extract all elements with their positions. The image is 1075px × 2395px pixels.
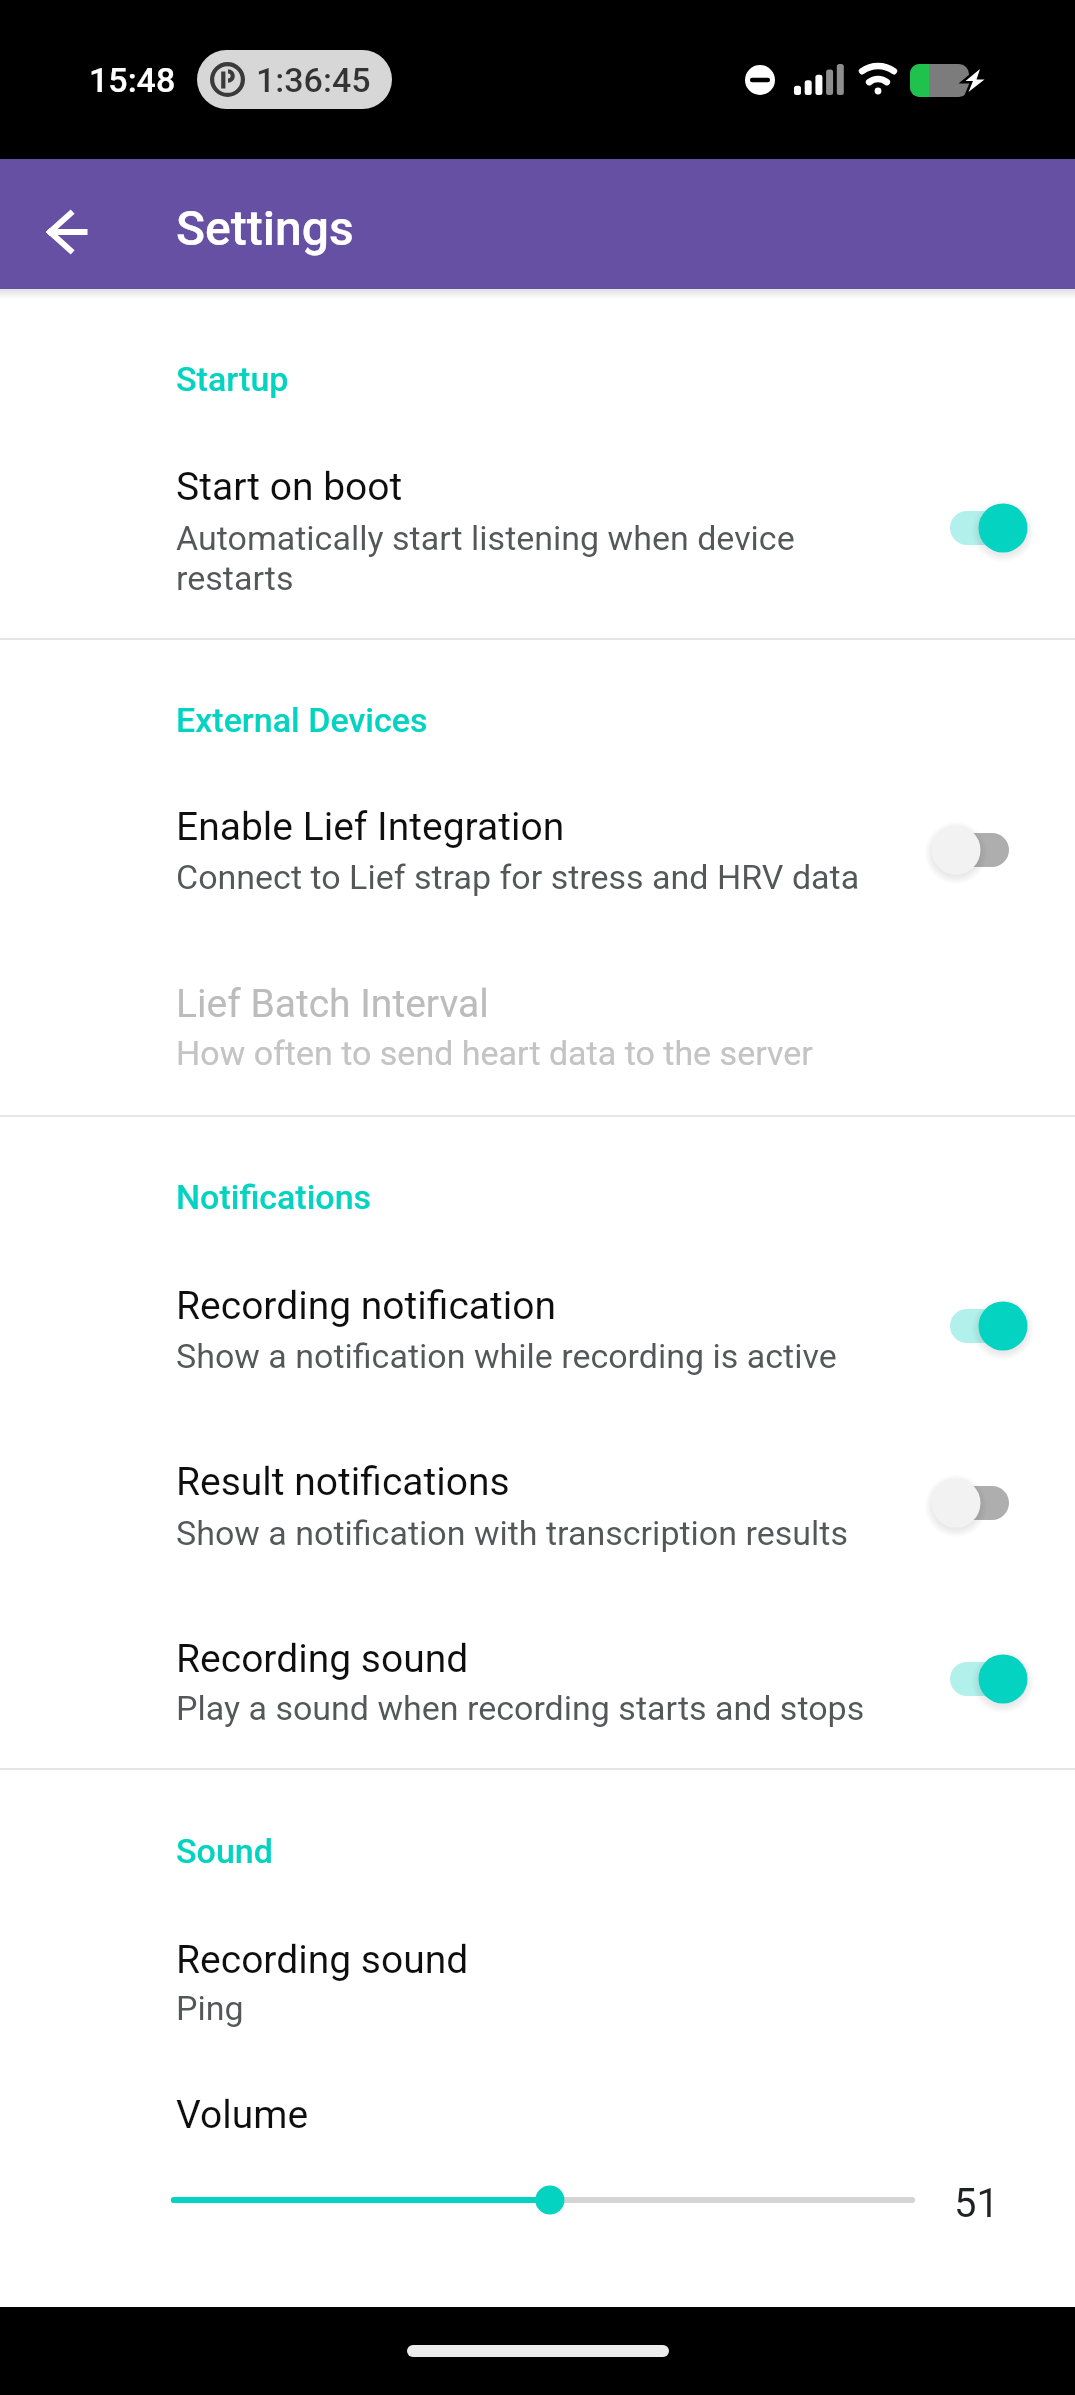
staticText: External Devices: [176, 700, 428, 740]
button[interactable]: Recording notification: [0, 1259, 1075, 1399]
button[interactable]: Switch on: [900, 1281, 1060, 1371]
button[interactable]: Recording sound: [0, 1612, 1075, 1752]
button[interactable]: Switch off: [900, 805, 1060, 895]
staticText: 1:36:45: [256, 60, 371, 100]
button[interactable]: Volume slider: [150, 2166, 940, 2234]
staticText: Automatically start listening when devic…: [176, 518, 795, 599]
button[interactable]: Result notifications: [0, 1435, 1075, 1575]
staticText: Enable Lief Integration: [176, 804, 565, 850]
staticText: Result notifications: [176, 1459, 510, 1505]
button[interactable]: Home: [407, 2345, 669, 2357]
button[interactable]: Recording sound: [0, 1913, 1075, 2053]
staticText: Show a notification with transcription r…: [176, 1513, 848, 1553]
staticText: Ping: [176, 1988, 244, 2028]
staticText: Volume: [176, 2092, 309, 2138]
button[interactable]: Switch on: [900, 483, 1060, 573]
button[interactable]: Volume: [0, 2068, 1075, 2258]
staticText: How often to send heart data to the serv…: [176, 1033, 813, 1073]
button[interactable]: Lief Batch Interval: [0, 957, 1075, 1097]
staticText: Sound: [176, 1831, 273, 1871]
staticText: Play a sound when recording starts and s…: [176, 1688, 865, 1728]
staticText: Settings: [176, 200, 354, 256]
staticText: Recording sound: [176, 1937, 469, 1983]
staticText: Lief Batch Interval: [176, 981, 489, 1027]
staticText: 51: [954, 2180, 999, 2227]
button[interactable]: Switch off: [900, 1458, 1060, 1548]
staticText: Recording sound: [176, 1636, 469, 1682]
button[interactable]: Switch on: [900, 1634, 1060, 1724]
staticText: Show a notification while recording is a…: [176, 1336, 837, 1376]
button[interactable]: Recording timer: [197, 50, 392, 109]
button[interactable]: Back: [20, 184, 108, 272]
staticText: Notifications: [176, 1177, 372, 1217]
staticText: Start on boot: [176, 464, 403, 510]
staticText: Startup: [176, 359, 289, 399]
staticText: Connect to Lief strap for stress and HRV…: [176, 857, 860, 897]
staticText: Recording notification: [176, 1283, 557, 1329]
button[interactable]: Start on boot: [0, 440, 1075, 625]
button[interactable]: Enable Lief Integration: [0, 780, 1075, 920]
staticText: 15:48: [89, 60, 176, 100]
